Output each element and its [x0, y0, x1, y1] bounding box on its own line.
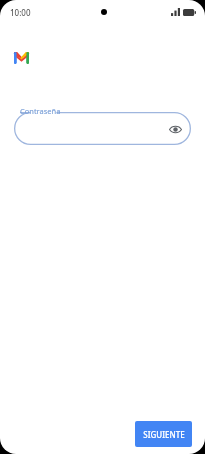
- staticText: SIGUIENTE: [143, 429, 185, 440]
- button[interactable]: Mostrar contraseña: [167, 121, 183, 137]
- staticText: Contraseña: [20, 106, 61, 116]
- button[interactable]: Contraseña: [14, 112, 191, 145]
- staticText: 10:00: [10, 7, 31, 18]
- button[interactable]: SIGUIENTE: [135, 421, 192, 447]
